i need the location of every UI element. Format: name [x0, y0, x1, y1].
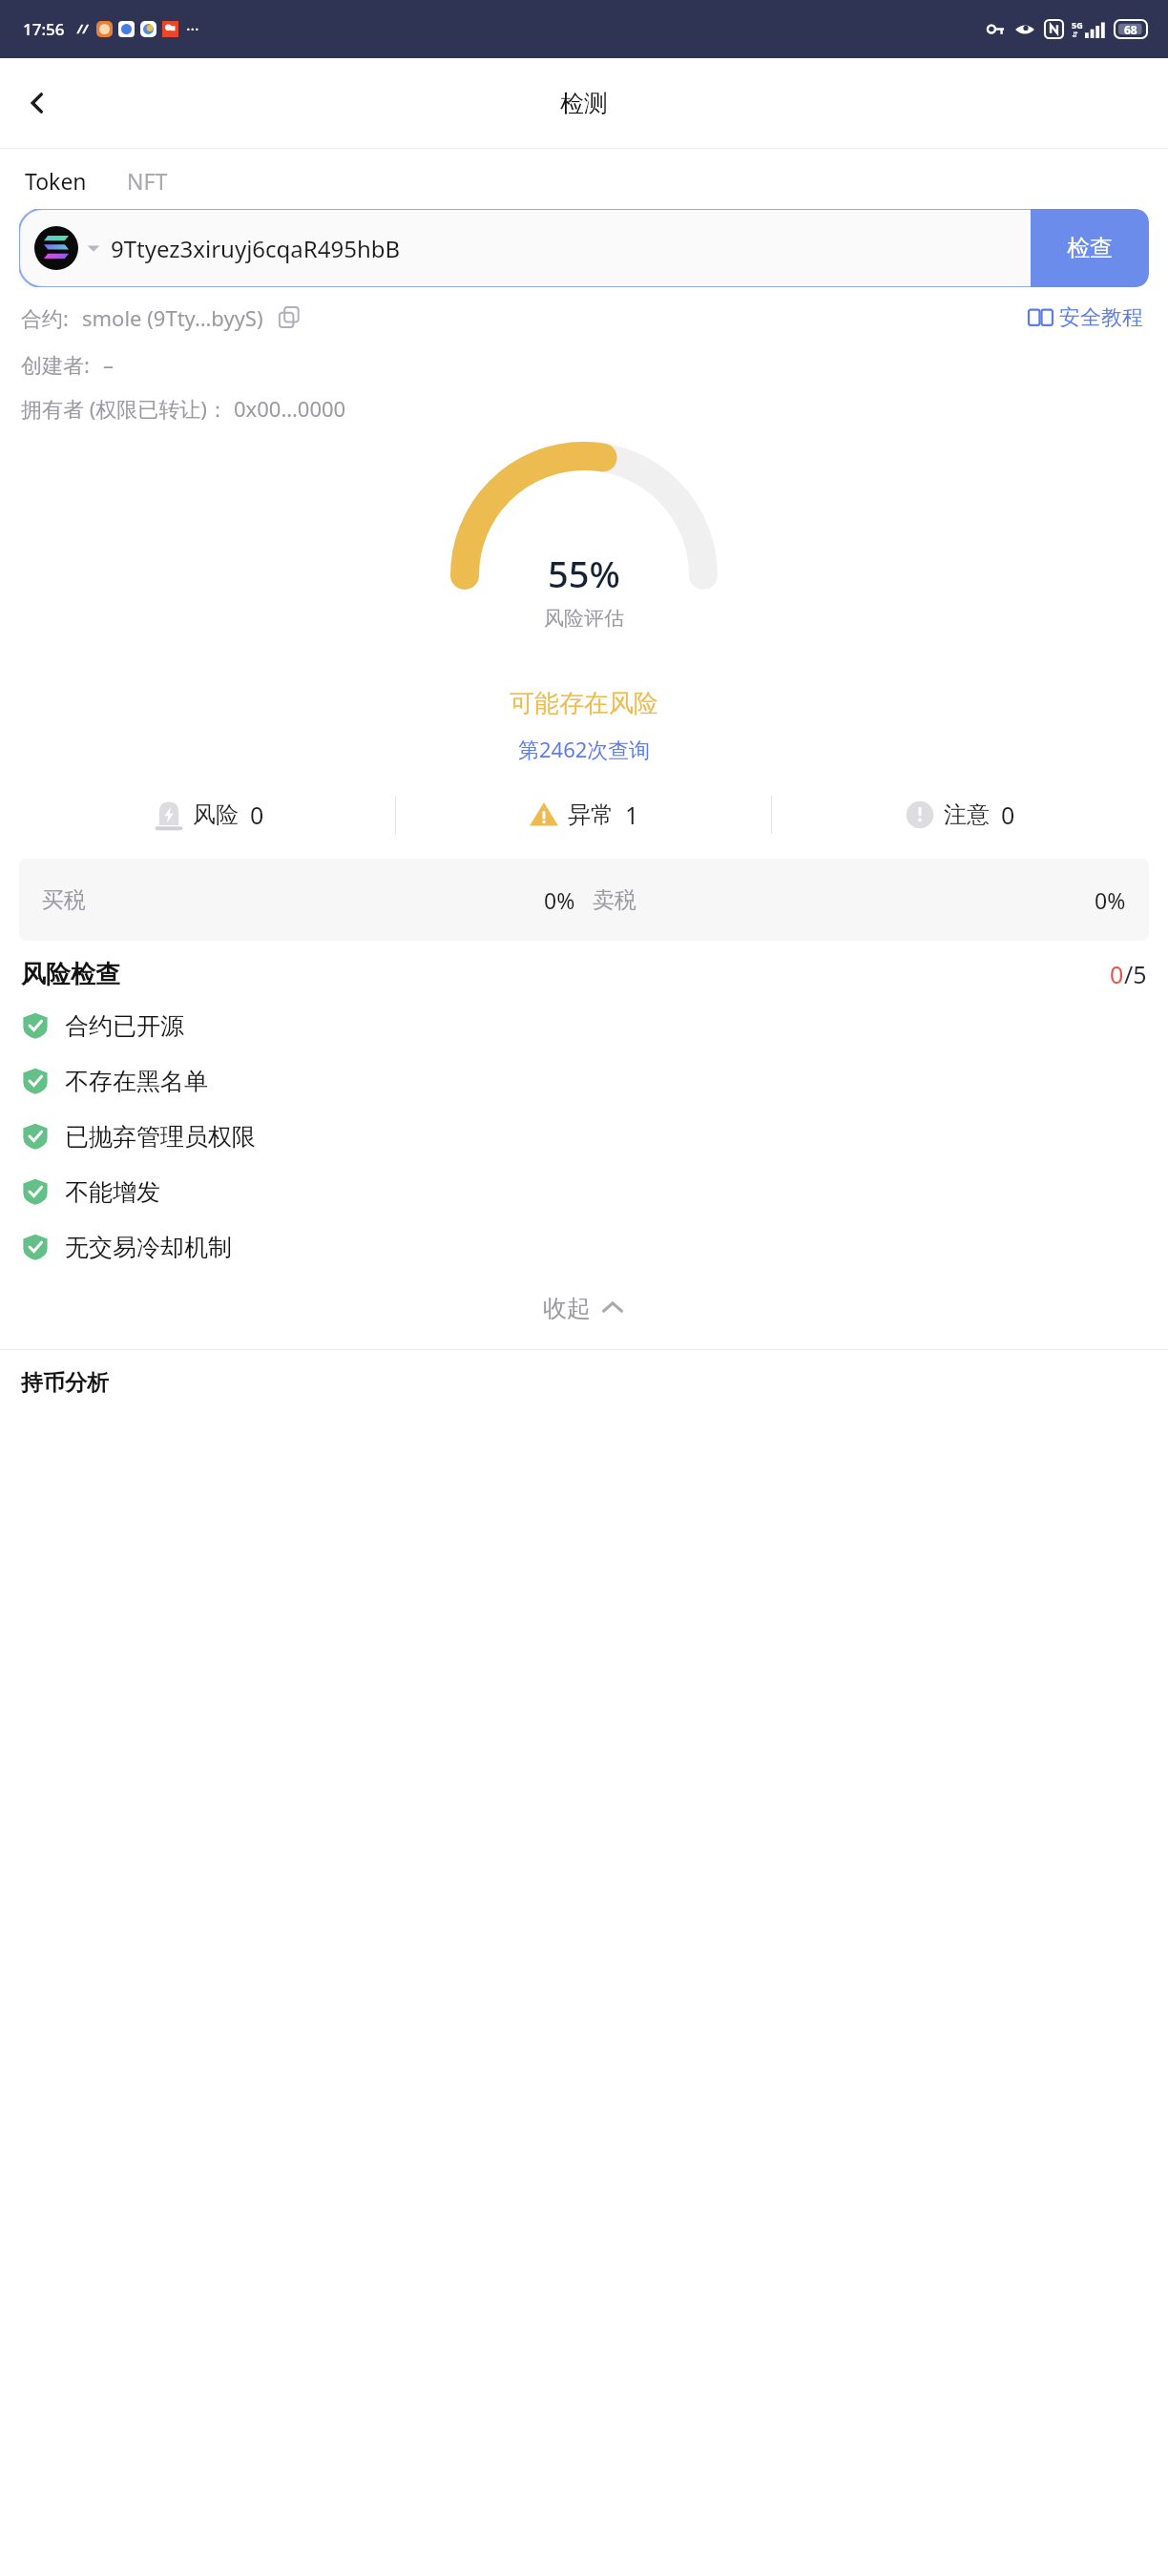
staticText: 拥有者 (权限已转让)： [21, 394, 228, 423]
staticText: 不存在黑名单 [65, 1067, 208, 1096]
staticText: – [103, 350, 115, 379]
staticText: 可能存在风险 [510, 688, 658, 719]
staticText: /5 [1124, 958, 1147, 990]
staticText: 风险检查 [21, 959, 120, 990]
staticText: 注意 [944, 800, 990, 829]
staticText: 检查 [1067, 234, 1113, 262]
staticText: 0% [544, 885, 575, 915]
staticText: 收起 [543, 1294, 591, 1323]
staticText: 合约: [21, 303, 69, 332]
button[interactable]: 检查 [1031, 209, 1149, 287]
staticText: ⇵ [1072, 31, 1078, 39]
staticText: 异常 [568, 800, 614, 829]
button[interactable]: NFT [123, 162, 172, 199]
button[interactable]: 第2462次查询 [514, 731, 655, 767]
staticText: 已抛弃管理员权限 [65, 1122, 256, 1152]
button[interactable]: 异常 [396, 784, 771, 845]
staticText: smole (9Tty…byyS) [82, 303, 263, 332]
staticText: 风险评估 [544, 606, 624, 631]
staticText: 0 [1110, 958, 1124, 990]
staticText: 无交易冷却机制 [65, 1233, 232, 1262]
staticText: 0 [1001, 799, 1015, 831]
staticText: 安全教程 [1059, 304, 1143, 331]
staticText: 17:56 [23, 18, 65, 40]
button[interactable]: Copy [275, 303, 303, 332]
staticText: 9Ttyez3xiruyj6cqaR495hbB [111, 233, 401, 264]
staticText: 合约已开源 [65, 1011, 184, 1041]
button[interactable]: 注意 [772, 784, 1147, 845]
button[interactable]: 9Ttyez3xiruyj6cqaR495hbB [19, 209, 1149, 287]
staticText: 5G [1072, 19, 1083, 31]
staticText: 68 [1124, 22, 1137, 37]
staticText: 0x00…0000 [234, 394, 346, 423]
staticText: 第2462次查询 [518, 735, 651, 763]
button[interactable]: 已抛弃管理员权限 [0, 1109, 1168, 1164]
staticText: 0 [250, 799, 264, 831]
button[interactable]: 风险 [21, 784, 395, 845]
staticText: Token [25, 166, 87, 196]
button[interactable]: Back [10, 75, 65, 131]
button[interactable]: 不存在黑名单 [0, 1053, 1168, 1109]
staticText: 持币分析 [21, 1369, 109, 1397]
button[interactable]: 收起 [0, 1275, 1168, 1341]
staticText: 不能增发 [65, 1177, 160, 1207]
staticText: 1 [625, 799, 639, 831]
staticText: 买税 [42, 886, 86, 914]
button[interactable]: 不能增发 [0, 1164, 1168, 1219]
button[interactable]: 合约已开源 [0, 998, 1168, 1053]
staticText: 卖税 [593, 886, 636, 914]
staticText: 55% [548, 549, 620, 598]
staticText: 检测 [560, 89, 608, 118]
staticText: NFT [127, 166, 168, 196]
button[interactable]: 无交易冷却机制 [0, 1219, 1168, 1275]
button[interactable]: 安全教程 [1025, 301, 1147, 335]
staticText: 0% [1095, 885, 1126, 915]
staticText: ··· [186, 18, 199, 40]
staticText: 创建者: [21, 350, 90, 379]
staticText: 风险 [193, 800, 239, 829]
button[interactable]: Token [21, 162, 91, 199]
